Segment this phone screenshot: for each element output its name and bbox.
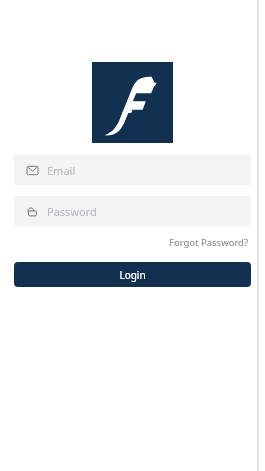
staticText: Login	[119, 268, 146, 282]
button[interactable]: Forgot Password?	[167, 234, 251, 251]
button[interactable]: Login	[14, 262, 251, 287]
staticText: Email	[47, 163, 76, 178]
button[interactable]: Email	[14, 155, 251, 185]
button[interactable]: Password	[14, 196, 251, 226]
staticText: Forgot Password?	[169, 236, 249, 249]
staticText: Password	[47, 204, 97, 219]
